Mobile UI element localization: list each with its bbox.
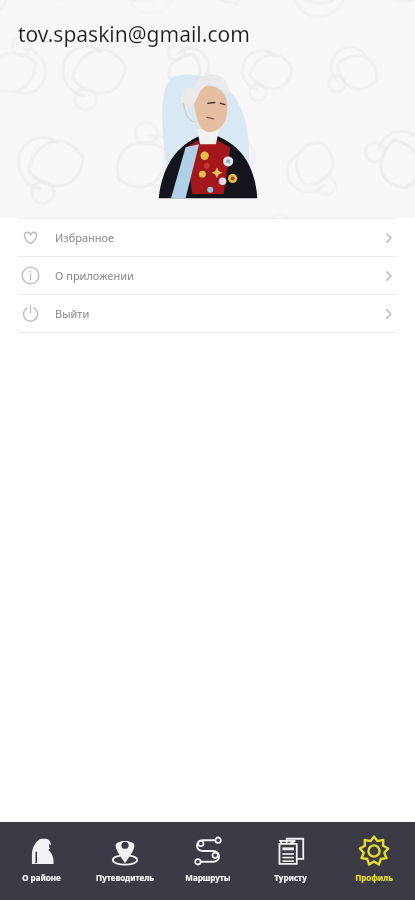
staticText: Путеводитель <box>96 872 154 883</box>
button[interactable]: Выйти <box>0 295 415 332</box>
button[interactable]: Избранное <box>0 219 415 256</box>
button[interactable]: Маршруты <box>166 822 249 900</box>
staticText: О районе <box>22 872 61 883</box>
staticText: Профиль <box>355 872 393 883</box>
button[interactable]: Путеводитель <box>83 822 166 900</box>
staticText: Выйти <box>55 306 90 321</box>
staticText: tov.spaskin@gmail.com <box>18 20 250 49</box>
staticText: Избранное <box>55 230 115 245</box>
button[interactable]: О районе <box>0 822 83 900</box>
staticText: Туристу <box>274 872 307 883</box>
staticText: О приложении <box>55 268 134 283</box>
button[interactable]: О приложении <box>0 257 415 294</box>
button[interactable]: Туристу <box>249 822 332 900</box>
button[interactable]: Профиль <box>332 822 415 900</box>
staticText: Маршруты <box>185 872 231 883</box>
